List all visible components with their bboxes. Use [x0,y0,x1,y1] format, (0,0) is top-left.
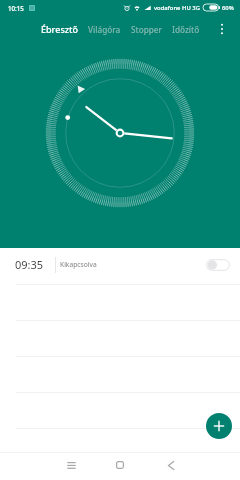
button[interactable]: Add alarm [206,413,232,439]
button[interactable]: More options [209,16,235,42]
button[interactable]: Recent apps [60,454,82,476]
button[interactable]: Ébresztő [36,19,83,39]
staticText: 10:15 [8,4,24,12]
staticText: Világóra [88,24,121,35]
button[interactable]: Alarm on off toggle [206,259,230,271]
staticText: 09:35 [15,257,44,272]
staticText: Időzítő [172,24,200,35]
staticText: 60% [222,4,234,12]
button[interactable]: Stopper [126,20,167,39]
staticText: Kikapcsolva [60,260,97,269]
button[interactable]: Back [160,454,182,476]
button[interactable]: Home [109,454,131,476]
staticText: Stopper [131,24,162,35]
button[interactable]: 09:35 [0,248,240,285]
button[interactable]: Világóra [83,20,126,39]
button[interactable]: Időzítő [167,20,205,39]
staticText: vodafone HU 3G [154,4,200,12]
staticText: Ébresztő [41,23,78,35]
